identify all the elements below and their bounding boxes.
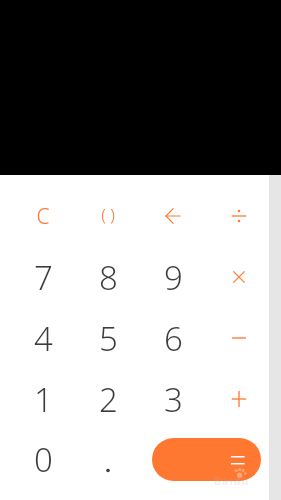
staticText: 9 <box>164 255 183 300</box>
button[interactable]: Minus <box>214 313 264 363</box>
button[interactable]: 0 <box>12 432 74 486</box>
staticText: 2 <box>99 377 118 422</box>
staticText: 3 <box>164 377 183 422</box>
button[interactable]: Backspace <box>148 191 198 241</box>
button[interactable]: Decimal point <box>83 434 133 484</box>
button[interactable]: ( ) <box>77 187 139 241</box>
button[interactable]: Equals <box>152 438 261 481</box>
button[interactable]: 9 <box>142 250 204 304</box>
button[interactable]: 6 <box>142 311 204 365</box>
button[interactable]: 7 <box>12 250 74 304</box>
staticText: Baidu <box>214 474 250 487</box>
staticText: 5 <box>99 316 118 361</box>
button[interactable]: 3 <box>142 372 204 426</box>
staticText: 4 <box>34 316 53 361</box>
staticText: 1 <box>34 377 53 422</box>
staticText: 6 <box>164 316 183 361</box>
staticText: 7 <box>34 255 53 300</box>
button[interactable]: 2 <box>77 372 139 426</box>
button[interactable]: 8 <box>77 250 139 304</box>
button[interactable]: 1 <box>12 372 74 426</box>
staticText: C <box>36 202 50 231</box>
button[interactable]: Plus <box>214 374 264 424</box>
button[interactable]: Divide <box>214 191 264 241</box>
button[interactable]: 4 <box>12 311 74 365</box>
staticText: 0 <box>34 437 53 482</box>
staticText: ( ) <box>101 203 115 225</box>
staticText: 8 <box>99 255 118 300</box>
button[interactable]: C <box>12 189 74 243</box>
button[interactable]: 5 <box>77 311 139 365</box>
button[interactable]: Multiply <box>214 252 264 302</box>
